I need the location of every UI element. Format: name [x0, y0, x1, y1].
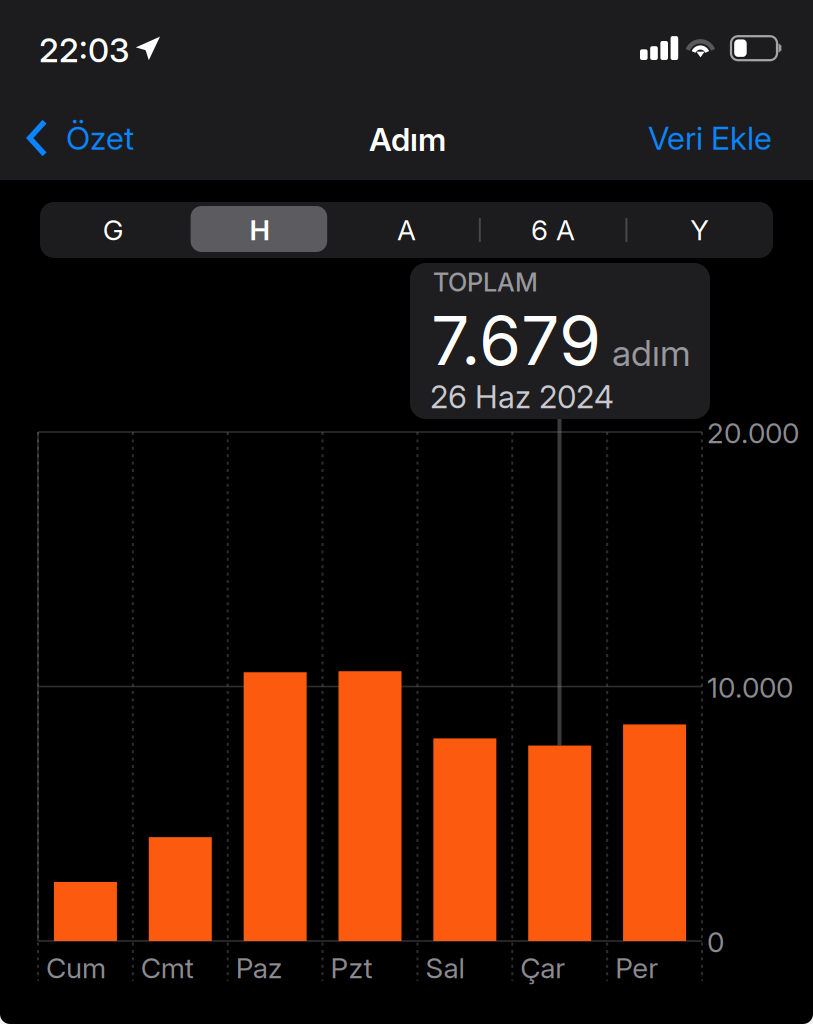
staticText: Per: [615, 951, 658, 985]
staticText: 26 Haz 2024: [430, 378, 614, 416]
button[interactable]: A: [333, 202, 480, 258]
staticText: Pzt: [331, 951, 373, 985]
staticText: 7.679: [431, 299, 601, 381]
button[interactable]: 6 A: [480, 202, 626, 258]
staticText: H: [249, 213, 270, 247]
staticText: 6 A: [531, 213, 575, 247]
staticText: Özet: [66, 119, 134, 157]
staticText: 0: [707, 925, 724, 959]
button[interactable]: H: [187, 202, 333, 258]
staticText: 20.000: [707, 416, 799, 450]
staticText: 22:03: [39, 30, 129, 70]
staticText: Cmt: [141, 951, 194, 985]
staticText: 10.000: [707, 670, 793, 704]
button[interactable]: Y: [626, 202, 773, 258]
button[interactable]: G: [40, 202, 187, 258]
staticText: A: [397, 213, 416, 247]
staticText: Cum: [46, 951, 106, 985]
staticText: Adım: [369, 120, 446, 159]
staticText: adım: [612, 331, 691, 375]
staticText: Veri Ekle: [648, 119, 772, 157]
staticText: Sal: [425, 951, 464, 985]
staticText: TOPLAM: [433, 267, 538, 298]
staticText: Paz: [236, 951, 283, 985]
button[interactable]: Veri Ekle: [638, 108, 782, 168]
staticText: Y: [690, 213, 709, 247]
staticText: Çar: [520, 951, 565, 985]
staticText: G: [103, 213, 124, 247]
button[interactable]: Özet: [17, 108, 146, 168]
